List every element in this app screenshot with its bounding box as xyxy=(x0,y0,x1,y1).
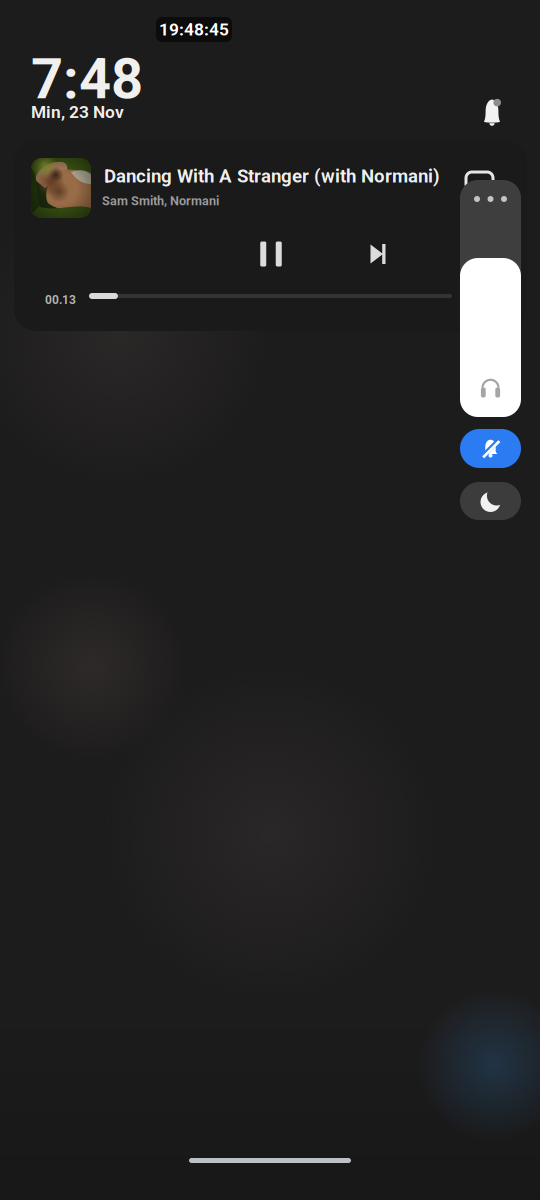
staticText: 7:48 xyxy=(31,46,143,112)
staticText: Dancing With A Stranger (with Normani) xyxy=(104,165,440,187)
staticText: 19:48:45 xyxy=(159,19,229,40)
button[interactable]: Mute notifications xyxy=(460,429,521,468)
staticText: 00.13 xyxy=(45,293,76,307)
staticText: Sam Smith, Normani xyxy=(102,194,219,208)
button[interactable]: Next track xyxy=(354,230,402,278)
staticText: Min, 23 Nov xyxy=(31,102,124,122)
button[interactable]: Do Not Disturb xyxy=(460,482,521,520)
button[interactable]: Notifications xyxy=(471,90,513,136)
button[interactable]: Volume xyxy=(460,180,521,417)
button[interactable]: Pause xyxy=(247,230,295,278)
